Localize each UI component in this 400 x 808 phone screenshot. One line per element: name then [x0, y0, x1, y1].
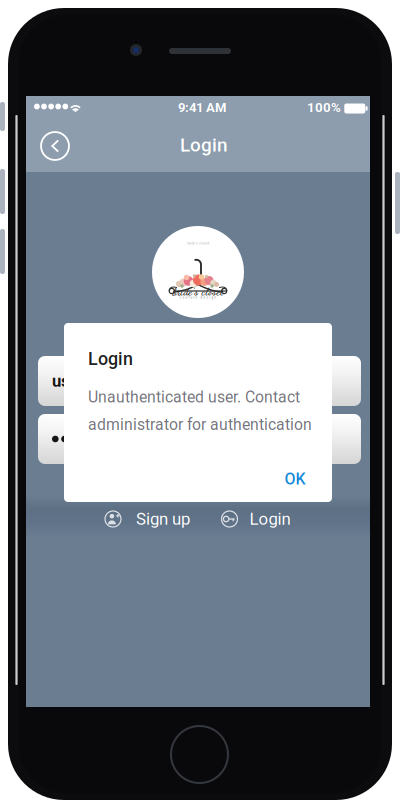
staticText: username: [52, 371, 126, 391]
staticText: Unauthenticated user. Contact administra…: [88, 388, 312, 434]
staticText: 100%: [307, 100, 341, 115]
staticText: Login: [249, 509, 290, 529]
button[interactable]: Sign up: [105, 508, 190, 530]
staticText: bride's closet: [172, 286, 223, 298]
button[interactable]: [38, 414, 361, 464]
button[interactable]: OK: [271, 462, 319, 496]
staticText: OK: [284, 470, 305, 488]
button[interactable]: username: [38, 356, 361, 406]
staticText: bride's closet: [187, 240, 209, 245]
button[interactable]: Login: [219, 508, 293, 530]
staticText: c o u t u r e d e s i g n: [179, 296, 216, 299]
staticText: Login: [180, 134, 228, 156]
staticText: Login: [88, 348, 133, 369]
staticText: 9:41 AM: [178, 100, 226, 115]
staticText: Sign up: [136, 509, 190, 529]
button[interactable]: Back: [41, 132, 69, 160]
